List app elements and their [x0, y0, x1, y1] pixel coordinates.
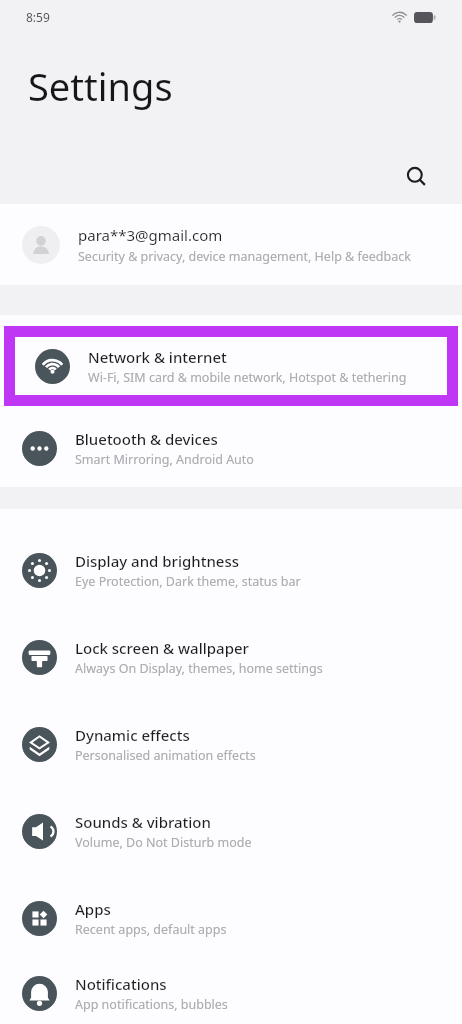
button[interactable]: Search settings — [394, 154, 438, 198]
staticText: Display and brightness — [75, 551, 239, 571]
staticText: Apps — [75, 899, 111, 919]
staticText: Eye Protection, Dark theme, status bar — [75, 573, 301, 590]
staticText: Network & internet — [88, 347, 227, 367]
button[interactable]: Display and brightness — [0, 527, 462, 614]
staticText: Settings — [28, 60, 173, 112]
staticText: Security & privacy, device management, H… — [78, 248, 411, 265]
button[interactable]: Lock screen & wallpaper — [0, 614, 462, 701]
staticText: Lock screen & wallpaper — [75, 638, 249, 658]
button[interactable]: para**3@gmail.com — [0, 204, 462, 285]
button[interactable]: Network & internet — [15, 337, 447, 395]
staticText: Wi-Fi, SIM card & mobile network, Hotspo… — [88, 369, 407, 386]
button[interactable]: Dynamic effects — [0, 701, 462, 788]
staticText: Always On Display, themes, home settings — [75, 660, 323, 677]
staticText: Recent apps, default apps — [75, 921, 227, 938]
staticText: Smart Mirroring, Android Auto — [75, 451, 254, 468]
staticText: Dynamic effects — [75, 725, 190, 745]
button[interactable]: Notifications — [0, 962, 462, 1024]
staticText: App notifications, bubbles — [75, 996, 228, 1013]
staticText: para**3@gmail.com — [78, 225, 223, 245]
staticText: Bluetooth & devices — [75, 429, 218, 449]
button[interactable]: Apps — [0, 875, 462, 962]
staticText: Notifications — [75, 974, 167, 994]
button[interactable]: Bluetooth & devices — [0, 409, 462, 487]
button[interactable]: Sounds & vibration — [0, 788, 462, 875]
staticText: 8:59 — [26, 9, 50, 25]
staticText: Sounds & vibration — [75, 812, 211, 832]
staticText: Volume, Do Not Disturb mode — [75, 834, 252, 851]
staticText: Personalised animation effects — [75, 747, 256, 764]
